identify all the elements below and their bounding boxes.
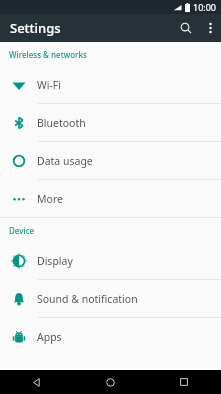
button[interactable]: Display (0, 242, 221, 280)
staticText: More (37, 192, 63, 206)
staticText: Device (9, 225, 35, 236)
button[interactable]: Back (0, 370, 73, 394)
button[interactable]: Home (73, 370, 147, 394)
button[interactable]: More options (199, 17, 221, 39)
button[interactable]: Search (173, 15, 199, 41)
button[interactable]: Sound & notification (0, 280, 221, 318)
staticText: Sound & notification (37, 292, 138, 306)
button[interactable]: Wi-Fi (0, 66, 221, 104)
staticText: Wireless & networks (9, 49, 87, 60)
button[interactable]: Bluetooth (0, 104, 221, 142)
staticText: Settings (10, 19, 61, 37)
staticText: Wi-Fi (37, 78, 62, 92)
staticText: 10:00 (193, 1, 217, 13)
staticText: Data usage (37, 154, 93, 168)
button[interactable]: Recent apps (147, 370, 221, 394)
staticText: Apps (37, 330, 62, 344)
button[interactable]: Data usage (0, 142, 221, 180)
button[interactable]: Apps (0, 318, 221, 355)
staticText: Bluetooth (37, 116, 86, 130)
staticText: Display (37, 254, 73, 268)
button[interactable]: More (0, 180, 221, 217)
